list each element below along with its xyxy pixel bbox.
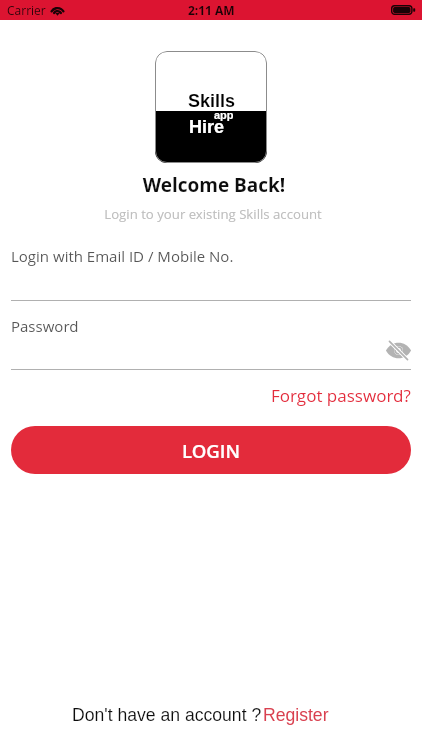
staticText: Carrier [7, 2, 46, 18]
staticText: Register [263, 705, 329, 725]
staticText: LOGIN [182, 438, 241, 463]
staticText: Login with Email ID / Mobile No. [11, 246, 234, 266]
staticText: Don't have an account ? [72, 705, 262, 725]
button[interactable]: Show password [385, 337, 412, 364]
staticText: Password [11, 316, 79, 336]
staticText: 2:11 AM [188, 2, 235, 18]
button[interactable]: Register [259, 701, 333, 729]
button[interactable]: Forgot password? [266, 380, 416, 411]
staticText: Forgot password? [271, 384, 411, 407]
button[interactable]: LOGIN [11, 426, 411, 474]
staticText: Hire [189, 117, 225, 137]
staticText: Welcome Back! [3, 172, 422, 198]
staticText: Skills [188, 91, 236, 111]
staticText: app [214, 109, 234, 121]
staticText: Login to your existing Skills account [2, 205, 422, 223]
